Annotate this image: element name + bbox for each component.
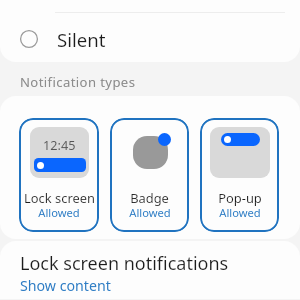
other: Silent option bbox=[20, 30, 38, 48]
staticText: Badge bbox=[130, 189, 169, 207]
staticText: Allowed bbox=[38, 205, 80, 220]
staticText: Lock screen bbox=[24, 189, 95, 207]
staticText: Allowed bbox=[129, 205, 171, 220]
button[interactable]: Pop-up bbox=[200, 118, 279, 232]
staticText: 12:45 bbox=[43, 136, 76, 153]
staticText: Pop-up bbox=[218, 189, 262, 207]
button[interactable]: Badge bbox=[110, 118, 189, 232]
button[interactable]: Lock screen notifications bbox=[0, 241, 300, 295]
staticText: Lock screen notifications bbox=[20, 251, 229, 276]
staticText: Notification types bbox=[20, 73, 136, 91]
staticText: Silent bbox=[57, 27, 106, 52]
button[interactable]: 12:45 bbox=[19, 118, 99, 232]
staticText: Allowed bbox=[219, 205, 261, 220]
staticText: Show content bbox=[20, 276, 111, 295]
button[interactable]: Silent option bbox=[0, 15, 300, 62]
